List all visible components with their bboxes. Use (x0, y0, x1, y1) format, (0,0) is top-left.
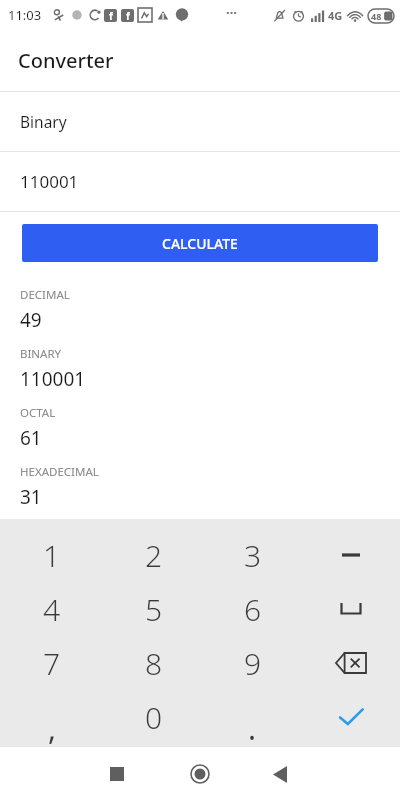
staticText: 7 (43, 643, 61, 684)
staticText: 31 (20, 484, 42, 510)
button[interactable]: 3 (203, 528, 302, 582)
button[interactable]: 0 (104, 690, 203, 744)
staticText: 9 (244, 643, 262, 684)
staticText: 3 (244, 535, 262, 576)
staticText: 110001 (20, 170, 79, 193)
staticText: 110001 (20, 366, 86, 392)
button[interactable]: Home (180, 754, 220, 794)
staticText: 61 (20, 425, 42, 451)
other: Minus (342, 550, 360, 560)
staticText: 2 (145, 535, 163, 576)
staticText: . (248, 708, 257, 744)
staticText: CALCULATE (162, 234, 238, 253)
button[interactable]: 9 (203, 636, 302, 690)
staticText: 4 (43, 589, 61, 630)
staticText: 8 (145, 643, 163, 684)
staticText: f (126, 9, 130, 22)
button[interactable]: Backspace (302, 636, 400, 690)
staticText: 49 (20, 307, 42, 333)
button[interactable]: Space (302, 582, 400, 636)
staticText: , (48, 708, 57, 744)
button[interactable]: 8 (104, 636, 203, 690)
other: Backspace (335, 652, 367, 674)
staticText: BINARY (20, 346, 62, 362)
button[interactable]: 5 (104, 582, 203, 636)
staticText: 4G (328, 8, 343, 23)
staticText: HEXADECIMAL (20, 464, 99, 480)
button[interactable]: Binary (0, 92, 400, 151)
button[interactable]: Back (260, 754, 300, 794)
staticText: 11:03 (8, 6, 42, 24)
staticText: 5 (145, 589, 163, 630)
staticText: Binary (20, 111, 67, 132)
staticText: 0 (145, 697, 163, 738)
other: Space (340, 603, 362, 615)
button[interactable]: Minus (302, 528, 400, 582)
button[interactable]: Done (302, 690, 400, 744)
button[interactable]: Recents (97, 754, 137, 794)
staticText: 48 (371, 10, 382, 22)
button[interactable]: 4 (0, 582, 104, 636)
staticText: OCTAL (20, 405, 56, 421)
staticText: DECIMAL (20, 287, 70, 303)
button[interactable]: 7 (0, 636, 104, 690)
button[interactable]: , (0, 690, 104, 744)
staticText: 6 (244, 589, 262, 630)
button[interactable]: 2 (104, 528, 203, 582)
button[interactable]: . (203, 690, 302, 744)
staticText: ··· (226, 3, 237, 21)
button[interactable]: 110001 (0, 152, 400, 211)
other: Done (338, 707, 364, 727)
staticText: 1 (43, 535, 61, 576)
button[interactable]: 1 (0, 528, 104, 582)
staticText: Converter (18, 47, 114, 74)
button[interactable]: 6 (203, 582, 302, 636)
button[interactable]: CALCULATE (22, 224, 378, 262)
staticText: f (109, 9, 113, 22)
